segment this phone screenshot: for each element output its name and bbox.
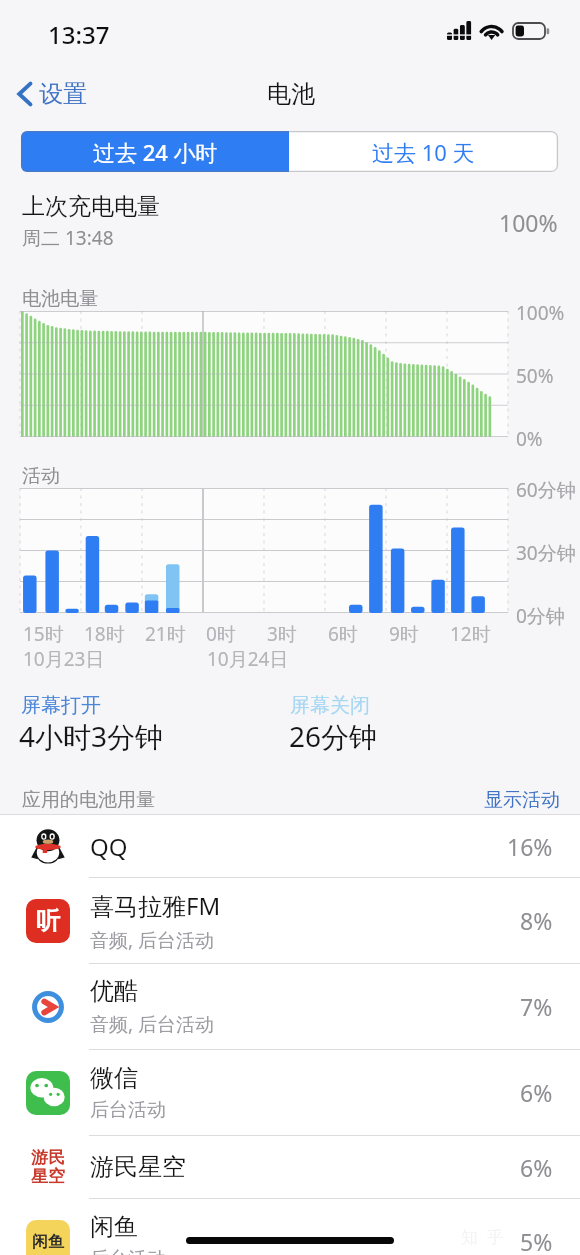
staticText: 0分钟 — [516, 603, 565, 629]
staticText: 闲鱼 — [90, 1212, 138, 1242]
staticText: 18时 — [84, 621, 125, 647]
staticText: 音频, 后台活动 — [90, 1011, 215, 1037]
button[interactable]: 闲鱼 — [0, 1199, 580, 1255]
staticText: 100% — [499, 207, 558, 238]
staticText: 上次充电电量 — [22, 192, 160, 221]
staticText: 16% — [507, 831, 553, 862]
staticText: 微信 — [90, 1063, 138, 1093]
staticText: 10月23日 — [23, 646, 105, 672]
staticText: QQ — [90, 830, 128, 863]
staticText: 0时 — [206, 621, 236, 647]
staticText: 9时 — [389, 621, 419, 647]
button[interactable]: 微信 — [0, 1050, 580, 1135]
staticText: 30分钟 — [516, 540, 576, 566]
staticText: 后台活动 — [90, 1247, 166, 1255]
staticText: 21时 — [145, 621, 186, 647]
staticText: 50% — [516, 363, 554, 389]
staticText: 100% — [516, 300, 565, 326]
button[interactable]: QQ — [0, 815, 580, 877]
staticText: 后台活动 — [90, 1098, 166, 1122]
staticText: 3时 — [267, 621, 297, 647]
staticText: 听 — [36, 906, 60, 936]
staticText: 知 乎 — [461, 1225, 504, 1248]
button[interactable]: 游民 — [0, 1136, 580, 1198]
staticText: 周二 13:48 — [22, 225, 114, 251]
staticText: 音频, 后台活动 — [90, 927, 215, 953]
staticText: 13:37 — [48, 18, 110, 51]
button[interactable]: 优酷 — [0, 964, 580, 1049]
staticText: 8% — [520, 905, 553, 936]
staticText: 显示活动 — [484, 788, 560, 812]
staticText: 屏幕打开 — [21, 693, 101, 718]
staticText: 应用的电池用量 — [22, 788, 155, 812]
staticText: 优酷 — [90, 976, 138, 1006]
staticText: 60分钟 — [516, 477, 576, 503]
button[interactable]: 过去 10 天 — [289, 131, 558, 172]
staticText: 26分钟 — [289, 717, 378, 755]
button[interactable]: 设置 — [14, 76, 90, 112]
staticText: 0% — [516, 426, 543, 452]
staticText: 10月24日 — [207, 646, 289, 672]
staticText: 6时 — [328, 621, 358, 647]
staticText: 12时 — [450, 621, 491, 647]
staticText: 15时 — [23, 621, 64, 647]
button[interactable]: 听 — [0, 878, 580, 963]
staticText: 闲鱼 — [32, 1232, 64, 1252]
staticText: 5% — [520, 1226, 553, 1255]
staticText: 过去 24 小时 — [93, 137, 218, 167]
staticText: 6% — [520, 1152, 553, 1183]
staticText: 6% — [520, 1077, 553, 1108]
button[interactable]: 过去 24 小时 — [21, 131, 289, 172]
staticText: 电池 — [267, 79, 315, 109]
staticText: 设置 — [39, 79, 87, 109]
staticText: 7% — [520, 991, 553, 1022]
staticText: 活动 — [22, 464, 60, 488]
staticText: 屏幕关闭 — [290, 693, 370, 718]
staticText: 游民星空 — [90, 1152, 186, 1182]
staticText: 4小时3分钟 — [19, 717, 164, 755]
button[interactable]: 显示活动 — [482, 786, 562, 814]
staticText: 星空 — [31, 1166, 65, 1187]
staticText: 过去 10 天 — [372, 137, 475, 167]
staticText: 电池电量 — [22, 287, 98, 311]
staticText: 游民 — [31, 1147, 65, 1168]
staticText: 喜马拉雅FM — [90, 889, 221, 922]
